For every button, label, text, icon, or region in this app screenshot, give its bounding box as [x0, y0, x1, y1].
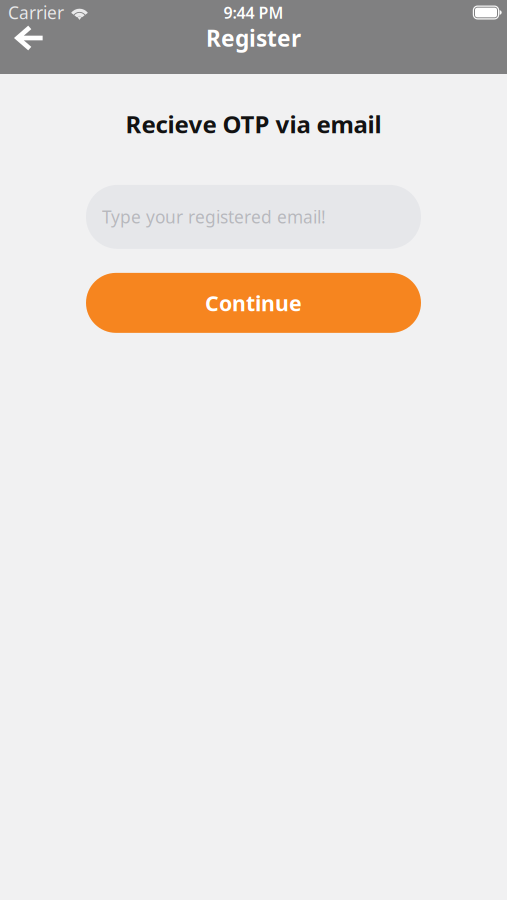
- button[interactable]: Back: [7, 24, 53, 52]
- staticText: Recieve OTP via email: [125, 108, 381, 140]
- staticText: 9:44 PM: [223, 2, 283, 23]
- button[interactable]: Continue: [86, 273, 421, 333]
- staticText: Continue: [205, 289, 302, 317]
- staticText: Carrier: [8, 1, 64, 24]
- staticText: Register: [206, 23, 301, 53]
- staticText: Type your registered email!: [102, 205, 326, 228]
- button[interactable]: Type your registered email!: [86, 185, 421, 249]
